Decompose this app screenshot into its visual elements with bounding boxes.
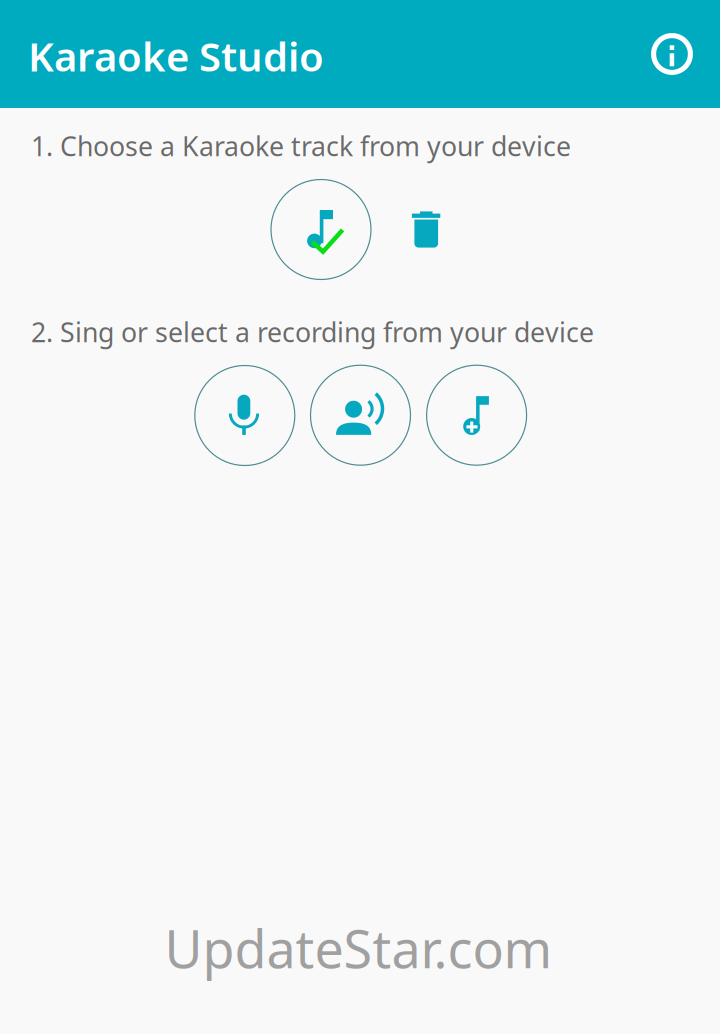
button[interactable]: Record bbox=[195, 365, 295, 465]
staticText: 2. Sing or select a recording from your … bbox=[31, 314, 594, 350]
button[interactable]: Choose a karaoke track bbox=[271, 179, 371, 279]
button[interactable]: Delete track bbox=[376, 179, 476, 279]
button[interactable]: Sing along bbox=[310, 365, 410, 465]
staticText: Karaoke Studio bbox=[28, 29, 324, 82]
staticText: 1. Choose a Karaoke track from your devi… bbox=[31, 128, 571, 164]
staticText: UpdateStar.com bbox=[164, 913, 552, 983]
button[interactable]: Info bbox=[640, 22, 704, 86]
button[interactable]: Add a recording bbox=[427, 365, 527, 465]
